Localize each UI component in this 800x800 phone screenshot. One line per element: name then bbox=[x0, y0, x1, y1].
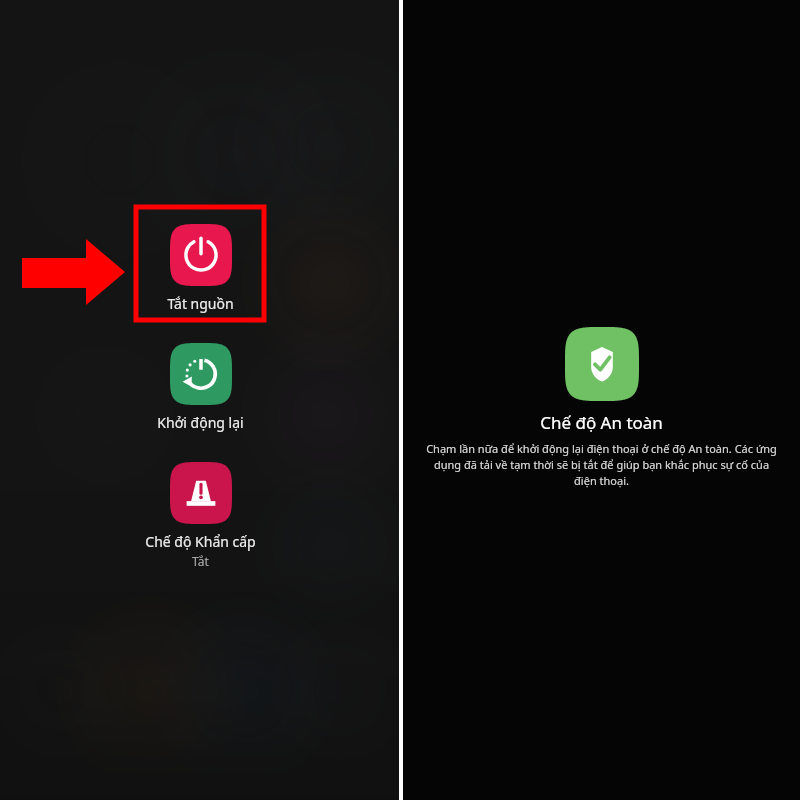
button[interactable]: Chế độ An toàn bbox=[565, 327, 639, 401]
staticText: Khởi động lại bbox=[157, 413, 244, 432]
button[interactable]: Chế độ Khẩn cấp bbox=[145, 462, 256, 569]
staticText: Chạm lần nữa để khởi động lại điện thoại… bbox=[425, 441, 778, 488]
button[interactable]: Tắt nguồn bbox=[167, 224, 234, 313]
staticText: Tắt bbox=[192, 553, 209, 569]
button[interactable]: Khởi động lại bbox=[157, 343, 244, 432]
staticText: Chế độ Khẩn cấp bbox=[145, 532, 256, 551]
staticText: Chế độ An toàn bbox=[540, 411, 663, 434]
staticText: Tắt nguồn bbox=[167, 294, 234, 313]
